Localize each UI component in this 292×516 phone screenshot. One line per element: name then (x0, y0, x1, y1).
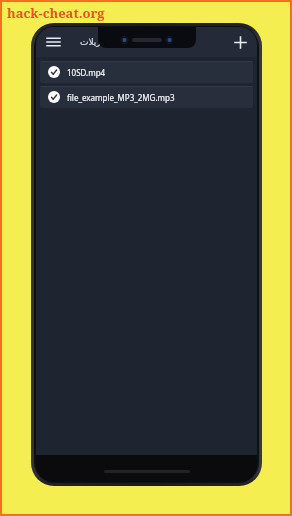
button[interactable]: Open navigation menu (42, 31, 64, 53)
button[interactable]: 10SD.mp4 (40, 61, 253, 83)
staticText: تنزيلات (80, 37, 107, 47)
button[interactable]: file_example_MP3_2MG.mp3 (40, 86, 253, 108)
button[interactable]: Add download (229, 31, 251, 53)
staticText: hack-cheat.org (7, 4, 105, 22)
staticText: 10SD.mp4 (67, 67, 106, 78)
staticText: file_example_MP3_2MG.mp3 (67, 92, 175, 103)
